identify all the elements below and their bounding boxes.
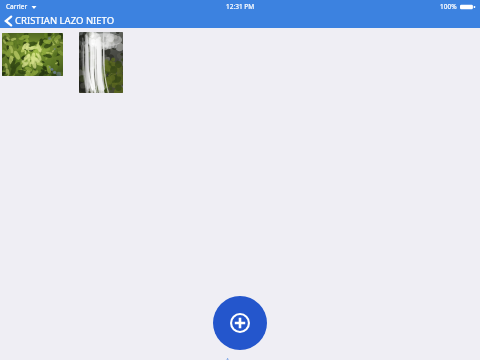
button[interactable]: Foto de cascada: [79, 32, 123, 93]
button[interactable]: Agregar: [213, 296, 267, 350]
staticText: Carrier: [6, 2, 28, 11]
staticText: CRISTIAN LAZO NIETO: [15, 14, 115, 27]
other: Atrás: [5, 16, 12, 26]
staticText: 12:31 PM: [226, 2, 255, 11]
staticText: 100%: [440, 2, 457, 11]
staticText: Agregar: [225, 356, 256, 360]
button[interactable]: Foto de follaje: [2, 33, 63, 76]
button[interactable]: Atrás: [4, 13, 116, 28]
